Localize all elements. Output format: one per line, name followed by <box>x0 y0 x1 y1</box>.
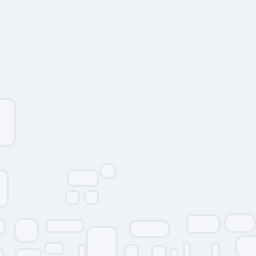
button[interactable]: Panel <box>87 227 117 256</box>
button[interactable]: Key 4 <box>212 243 219 256</box>
button[interactable]: Chip 1 <box>66 191 79 204</box>
button[interactable]: Sliver <box>79 245 85 256</box>
button[interactable]: Cell 2 <box>225 214 255 232</box>
button[interactable]: Key 3 <box>184 243 190 256</box>
button[interactable]: Cell 1 <box>187 215 219 233</box>
button[interactable]: Key 2 <box>152 246 166 256</box>
button[interactable]: Pill <box>47 220 83 232</box>
button[interactable]: Small pill <box>45 243 63 254</box>
button[interactable]: Badge <box>101 164 115 178</box>
button[interactable]: Chip 2 <box>85 191 98 204</box>
button[interactable]: Card 2 <box>0 170 8 207</box>
button[interactable]: Key 1 <box>125 245 138 256</box>
button[interactable]: Row <box>130 221 169 237</box>
button[interactable]: Dot <box>170 249 178 256</box>
button[interactable]: Edge bar <box>0 249 3 256</box>
button[interactable]: Edge tile <box>0 220 5 234</box>
button[interactable]: Card 1 <box>0 99 15 146</box>
button[interactable]: Title <box>68 170 98 186</box>
button[interactable]: Tile <box>15 219 38 242</box>
button[interactable]: Cell 3 <box>236 236 256 256</box>
button[interactable]: Bar <box>16 249 41 256</box>
